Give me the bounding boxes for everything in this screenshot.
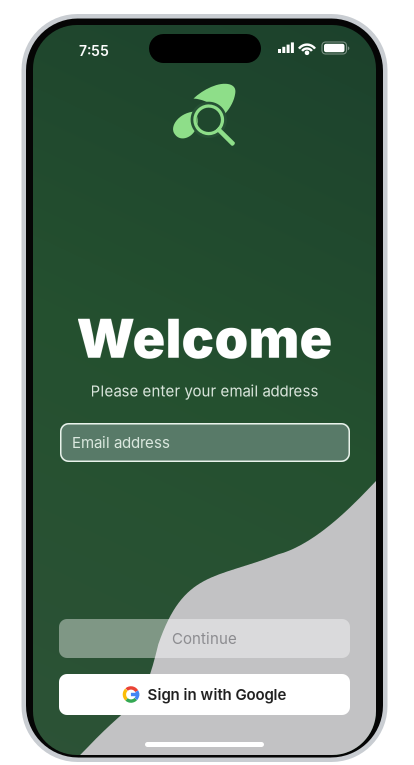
button[interactable]: Sign in with Google — [59, 674, 350, 715]
staticText: Email address — [72, 433, 170, 451]
button[interactable]: Continue — [59, 619, 350, 658]
button[interactable]: Email address — [60, 423, 350, 462]
staticText: Please enter your email address — [90, 382, 318, 400]
staticText: Welcome — [76, 305, 332, 371]
staticText: Continue — [172, 629, 237, 647]
staticText: Sign in with Google — [147, 685, 286, 703]
staticText: 7:55 — [79, 42, 109, 59]
